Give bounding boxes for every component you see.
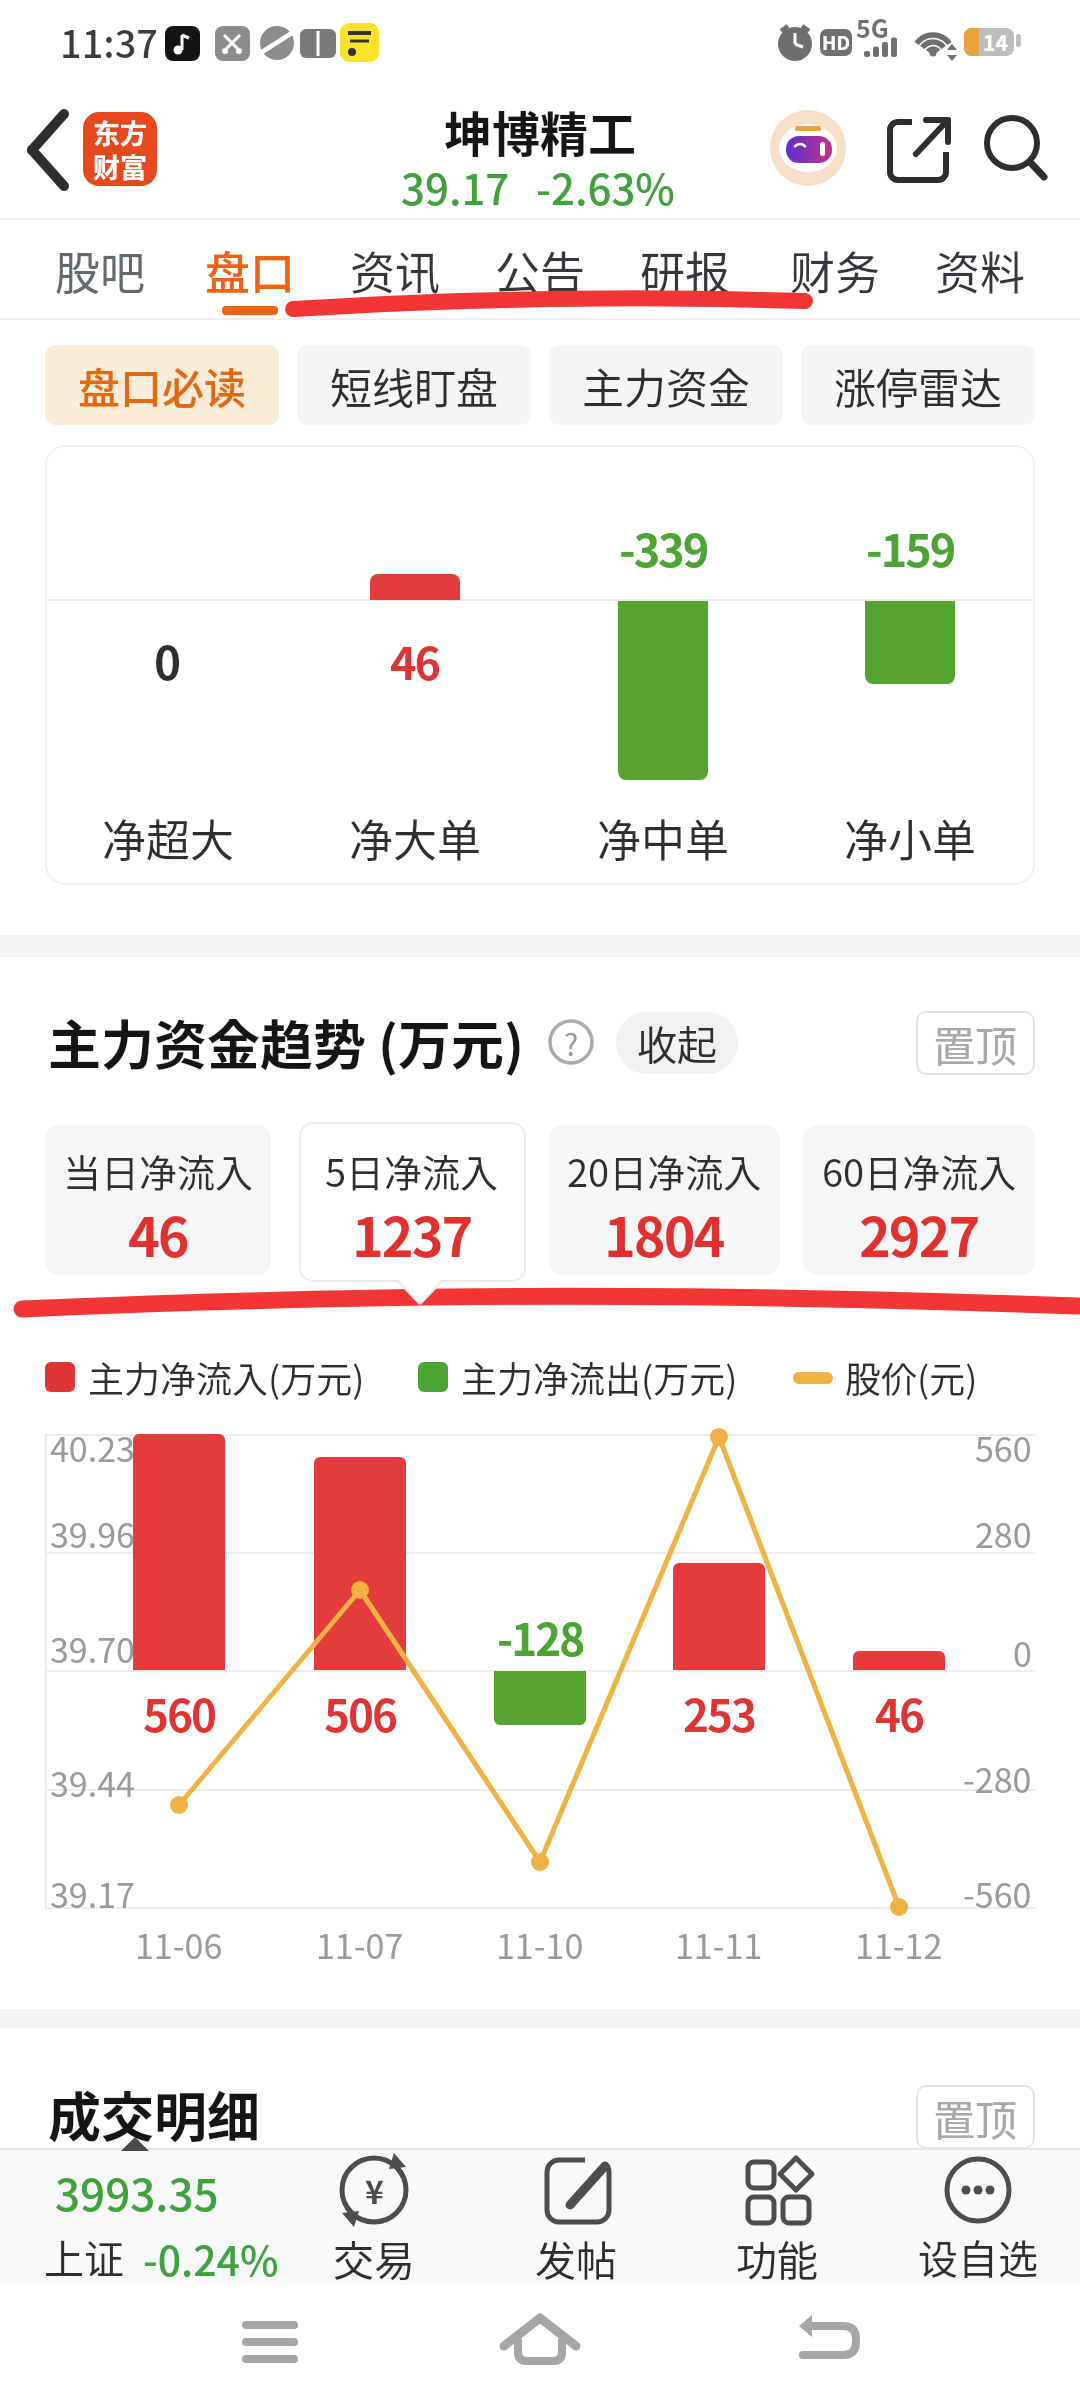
staticText: 40.23: [50, 1423, 135, 1472]
button[interactable]: 财务: [763, 222, 907, 318]
staticText: 0: [154, 627, 182, 694]
staticText: ?: [564, 1021, 579, 1064]
staticText: 发帖: [535, 2228, 617, 2287]
staticText: 1237: [352, 1194, 472, 1272]
button[interactable]: 涨停雷达: [801, 345, 1035, 425]
staticText: 5G: [856, 9, 889, 45]
button[interactable]: 研报: [613, 222, 757, 318]
staticText: 39.96: [50, 1509, 135, 1558]
staticText: 11-10: [496, 1920, 584, 1969]
staticText: 短线盯盘: [330, 355, 499, 416]
button[interactable]: [980, 112, 1056, 188]
staticText: 收起: [637, 1014, 717, 1072]
button[interactable]: [300, 2150, 460, 2285]
button[interactable]: [20, 2150, 280, 2285]
staticText: 财务: [790, 238, 881, 303]
staticText: 上证: [44, 2228, 124, 2286]
button[interactable]: 公告: [468, 222, 612, 318]
button[interactable]: [700, 2150, 860, 2285]
button[interactable]: [490, 2300, 590, 2390]
staticText: 置顶: [933, 2087, 1018, 2148]
staticText: 盘口: [205, 238, 296, 303]
button[interactable]: [880, 112, 956, 188]
staticText: 主力净流入(万元): [88, 1351, 365, 1403]
staticText: 280: [975, 1509, 1032, 1558]
staticText: 盘口必读: [78, 355, 247, 416]
staticText: 股价(元): [845, 1351, 978, 1403]
button[interactable]: 股吧: [28, 222, 172, 318]
staticText: 46: [875, 1681, 923, 1745]
staticText: 39.70: [50, 1624, 135, 1673]
staticText: 14: [983, 27, 1008, 57]
staticText: 资料: [935, 238, 1026, 303]
staticText: 39.17: [50, 1869, 135, 1918]
staticText: 成交明细: [48, 2076, 260, 2153]
button[interactable]: 资料: [908, 222, 1052, 318]
button[interactable]: 盘口: [178, 222, 322, 318]
button[interactable]: [548, 1019, 594, 1065]
staticText: ¥: [365, 2167, 384, 2213]
staticText: 5日净流入: [325, 1143, 499, 1198]
button[interactable]: [299, 1122, 526, 1282]
staticText: 46: [128, 1194, 188, 1272]
staticText: 股吧: [55, 238, 146, 303]
staticText: 当日净流入: [63, 1143, 254, 1198]
staticText: 净小单: [844, 806, 976, 870]
button[interactable]: 短线盯盘: [297, 345, 531, 425]
staticText: 财富: [93, 147, 147, 186]
button[interactable]: 资讯: [323, 222, 467, 318]
staticText: 1804: [604, 1194, 724, 1272]
staticText: 11-11: [675, 1920, 763, 1969]
button[interactable]: [890, 2150, 1060, 2285]
staticText: -2.63%: [536, 156, 675, 217]
button[interactable]: 置顶: [916, 1011, 1035, 1075]
staticText: -339: [619, 515, 708, 580]
staticText: 净超大: [102, 806, 234, 870]
staticText: 2927: [859, 1194, 979, 1272]
staticText: 39.17: [401, 156, 510, 217]
staticText: 公告: [495, 238, 586, 303]
staticText: -0.24%: [143, 2228, 279, 2287]
staticText: 3993.35: [55, 2160, 219, 2224]
button[interactable]: [549, 1125, 780, 1275]
button[interactable]: 盘口必读: [45, 345, 279, 425]
staticText: 46: [390, 628, 440, 693]
staticText: 39.44: [50, 1758, 135, 1807]
staticText: 功能: [736, 2228, 818, 2287]
staticText: 11-06: [135, 1920, 223, 1969]
staticText: 置顶: [933, 1013, 1018, 1074]
staticText: 11-07: [316, 1920, 404, 1969]
staticText: 560: [143, 1681, 215, 1745]
staticText: 交易: [333, 2228, 415, 2287]
staticText: 560: [975, 1423, 1032, 1472]
staticText: 主力资金趋势 (万元): [48, 1004, 525, 1081]
button[interactable]: [220, 2300, 320, 2390]
staticText: 东方: [93, 113, 147, 152]
staticText: 净中单: [597, 806, 729, 870]
staticText: -280: [963, 1754, 1032, 1803]
staticText: 主力资金: [582, 355, 751, 416]
staticText: -560: [963, 1869, 1032, 1918]
staticText: 253: [683, 1681, 755, 1745]
staticText: 主力净流出(万元): [461, 1351, 738, 1403]
button[interactable]: [803, 1125, 1035, 1275]
button[interactable]: 置顶: [916, 2085, 1035, 2149]
staticText: -128: [497, 1605, 584, 1669]
staticText: 11:37: [60, 14, 158, 69]
staticText: 506: [324, 1681, 396, 1745]
staticText: -159: [866, 515, 955, 580]
button[interactable]: [770, 110, 846, 186]
button[interactable]: [10, 105, 90, 195]
button[interactable]: 收起: [616, 1012, 738, 1074]
staticText: 资讯: [350, 238, 441, 303]
staticText: 净大单: [349, 806, 481, 870]
button[interactable]: [45, 1125, 271, 1275]
button[interactable]: [500, 2150, 660, 2285]
staticText: HD: [822, 28, 850, 56]
staticText: 涨停雷达: [834, 355, 1003, 416]
button[interactable]: 主力资金: [549, 345, 783, 425]
staticText: 研报: [640, 238, 731, 303]
staticText: 60日净流入: [822, 1143, 1017, 1198]
staticText: 设自选: [918, 2228, 1038, 2286]
button[interactable]: [775, 2300, 875, 2390]
